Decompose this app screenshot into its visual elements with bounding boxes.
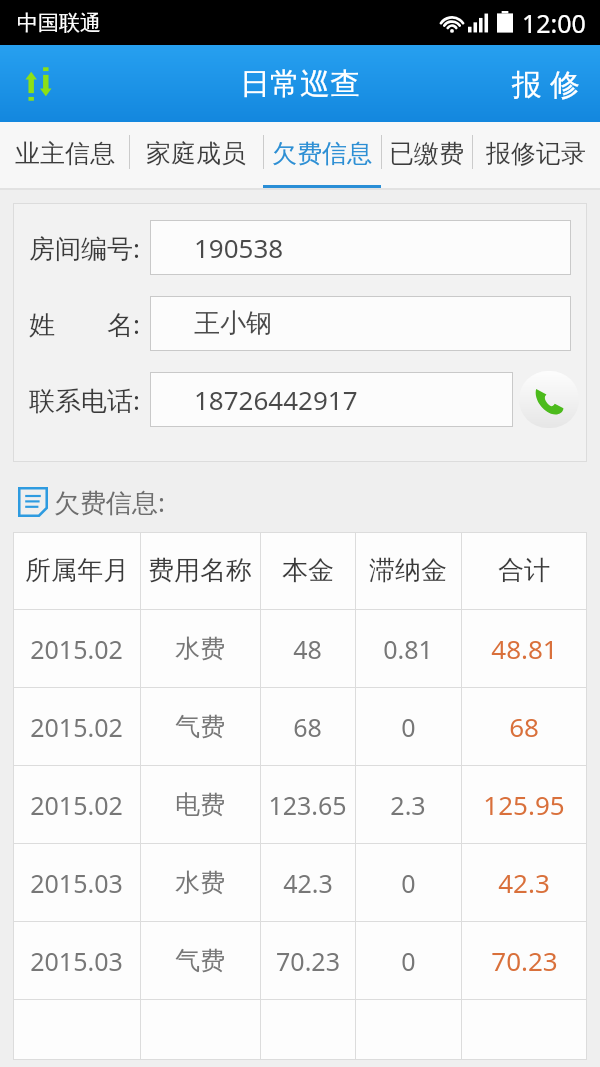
button[interactable]: Call — [519, 371, 579, 428]
button[interactable]: 2015.02 — [13, 688, 587, 765]
staticText: 190538 — [194, 230, 284, 265]
staticText: 0 — [401, 866, 416, 900]
staticText: 2015.02 — [30, 710, 123, 744]
staticText: 12:00 — [522, 6, 586, 40]
staticText: 0 — [401, 710, 416, 744]
button[interactable]: 2015.03 — [13, 844, 587, 921]
staticText: 气费 — [175, 945, 225, 976]
staticText: 70.23 — [491, 943, 558, 978]
staticText: 2015.02 — [30, 632, 123, 666]
staticText: 业主信息 — [15, 138, 115, 169]
staticText: 报修记录 — [486, 138, 586, 169]
button[interactable]: 2015.02 — [13, 610, 587, 687]
staticText: 水费 — [175, 633, 225, 664]
staticText: 中国联通 — [17, 10, 101, 36]
staticText: 姓 名: — [29, 306, 140, 342]
button[interactable]: 报 修 — [492, 45, 600, 122]
staticText: 水费 — [175, 867, 225, 898]
staticText: 2015.03 — [30, 944, 123, 978]
staticText: 2.3 — [390, 788, 426, 822]
staticText: 68 — [293, 710, 322, 744]
staticText: 70.23 — [276, 944, 340, 978]
staticText: 所属年月 — [25, 554, 129, 587]
button[interactable]: Sync — [0, 45, 78, 122]
staticText: 0 — [401, 944, 416, 978]
staticText: 欠费信息: — [54, 484, 165, 520]
staticText: 报 修 — [512, 63, 580, 104]
staticText: 已缴费 — [389, 138, 464, 169]
staticText: 联系电话: — [29, 382, 140, 418]
staticText: 房间编号: — [29, 230, 140, 266]
staticText: 42.3 — [498, 865, 550, 900]
button[interactable]: 欠费信息 — [263, 122, 381, 190]
staticText: 0.81 — [383, 632, 433, 666]
staticText: 本金 — [282, 554, 334, 587]
staticText: 2015.02 — [30, 788, 123, 822]
button[interactable]: 报修记录 — [472, 122, 600, 190]
staticText: 42.3 — [283, 866, 333, 900]
staticText: 费用名称 — [148, 554, 252, 587]
staticText: 68 — [509, 709, 539, 744]
staticText: 18726442917 — [194, 382, 358, 417]
button[interactable]: 家庭成员 — [129, 122, 263, 190]
staticText: 123.65 — [268, 788, 347, 822]
staticText: 48 — [293, 632, 322, 666]
staticText: 日常巡查 — [240, 65, 360, 103]
button[interactable]: 2015.02 — [13, 766, 587, 843]
staticText: 125.95 — [483, 787, 565, 822]
staticText: 48.81 — [491, 631, 558, 666]
button[interactable]: 已缴费 — [381, 122, 472, 190]
staticText: 2015.03 — [30, 866, 123, 900]
staticText: 合计 — [498, 554, 550, 587]
staticText: 王小钢 — [194, 307, 272, 340]
button[interactable]: 2015.03 — [13, 922, 587, 999]
staticText: 滞纳金 — [369, 554, 447, 587]
staticText: 气费 — [175, 711, 225, 742]
button[interactable]: 业主信息 — [0, 122, 129, 190]
staticText: 电费 — [175, 789, 225, 820]
staticText: 欠费信息 — [272, 138, 372, 169]
staticText: 家庭成员 — [146, 138, 246, 169]
